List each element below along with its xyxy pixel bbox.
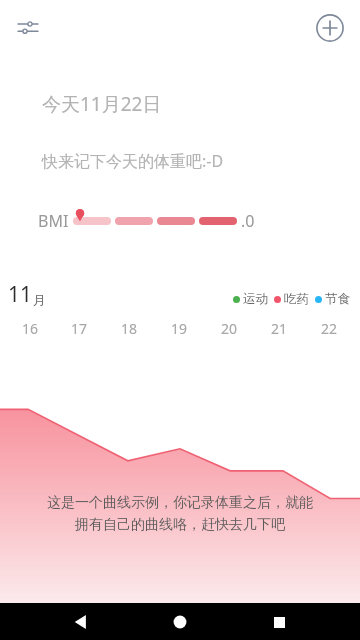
button[interactable]: 19 <box>154 319 204 338</box>
button[interactable]: 20 <box>204 319 254 338</box>
button[interactable]: Recent apps <box>261 604 297 640</box>
button[interactable]: 运动 <box>233 291 268 307</box>
button[interactable]: Settings <box>8 8 48 48</box>
button[interactable]: 吃药 <box>274 291 309 307</box>
button[interactable]: Back <box>63 604 99 640</box>
staticText: 运动 <box>243 291 268 307</box>
button[interactable] <box>115 217 153 225</box>
staticText: 这是一个曲线示例，你记录体重之后，就能 <box>47 494 313 512</box>
staticText: 19 <box>171 319 188 338</box>
staticText: 11 <box>8 280 33 309</box>
staticText: 17 <box>71 319 88 338</box>
staticText: 拥有自己的曲线咯，赶快去几下吧 <box>75 516 285 534</box>
button[interactable]: 22 <box>304 319 354 338</box>
staticText: BMI <box>38 210 69 232</box>
staticText: .0 <box>241 210 255 232</box>
button[interactable]: 16 <box>6 319 55 338</box>
staticText: 18 <box>121 319 138 338</box>
button[interactable]: 18 <box>104 319 154 338</box>
staticText: 22 <box>321 319 338 338</box>
button[interactable] <box>199 217 237 225</box>
staticText: 月 <box>33 292 46 308</box>
staticText: 吃药 <box>284 291 309 307</box>
staticText: 21 <box>271 319 288 338</box>
button[interactable]: Add record <box>310 8 350 48</box>
button[interactable]: 节食 <box>315 291 350 307</box>
button[interactable]: Home <box>162 604 198 640</box>
staticText: 快来记下今天的体重吧:-D <box>42 150 224 172</box>
button[interactable] <box>73 217 111 225</box>
staticText: 今天11月22日 <box>42 91 162 117</box>
button[interactable]: 17 <box>55 319 104 338</box>
button[interactable] <box>157 217 195 225</box>
staticText: 节食 <box>325 291 350 307</box>
staticText: 16 <box>22 319 39 338</box>
button[interactable]: 21 <box>254 319 304 338</box>
staticText: 20 <box>221 319 238 338</box>
